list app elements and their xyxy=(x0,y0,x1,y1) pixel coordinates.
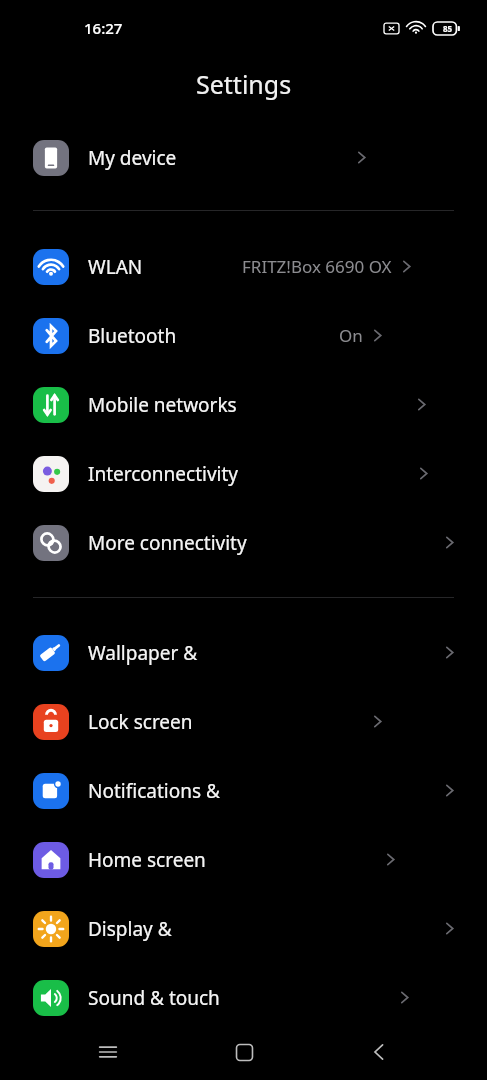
staticText: WLAN xyxy=(88,254,143,280)
staticText: More connectivity options xyxy=(88,530,265,556)
button[interactable]: WLAN xyxy=(0,232,487,301)
button[interactable]: My device xyxy=(0,123,487,192)
staticText: Notifications & status bar xyxy=(88,778,265,804)
staticText: Bluetooth xyxy=(88,323,177,349)
button[interactable]: Interconnectivity xyxy=(0,439,487,508)
button[interactable]: Lock screen xyxy=(0,687,487,756)
button[interactable]: Wallpaper & personalization xyxy=(0,618,487,687)
button[interactable]: Back xyxy=(351,1024,407,1080)
staticText: On xyxy=(339,324,363,347)
button[interactable]: Bluetooth xyxy=(0,301,487,370)
staticText: Settings xyxy=(196,67,292,101)
button[interactable]: Home xyxy=(216,1024,272,1080)
button[interactable]: Home screen xyxy=(0,825,487,894)
staticText: Sound & touch xyxy=(88,985,220,1011)
button[interactable]: Recent apps xyxy=(80,1024,136,1080)
button[interactable]: Display & brightness xyxy=(0,894,487,963)
staticText: Display & brightness xyxy=(88,916,265,942)
staticText: My device xyxy=(88,145,177,171)
button[interactable]: Sound & touch xyxy=(0,963,487,1032)
staticText: Home screen xyxy=(88,847,206,873)
staticText: Interconnectivity xyxy=(88,461,239,487)
staticText: 85 xyxy=(443,23,453,34)
staticText: 16:27 xyxy=(84,18,123,38)
staticText: Wallpaper & personalization xyxy=(88,640,265,666)
button[interactable]: Notifications & status bar xyxy=(0,756,487,825)
staticText: Mobile networks xyxy=(88,392,237,418)
button[interactable]: More connectivity options xyxy=(0,508,487,577)
button[interactable]: Mobile networks xyxy=(0,370,487,439)
staticText: FRITZ!Box 6690 OX xyxy=(242,255,392,278)
staticText: Lock screen xyxy=(88,709,193,735)
